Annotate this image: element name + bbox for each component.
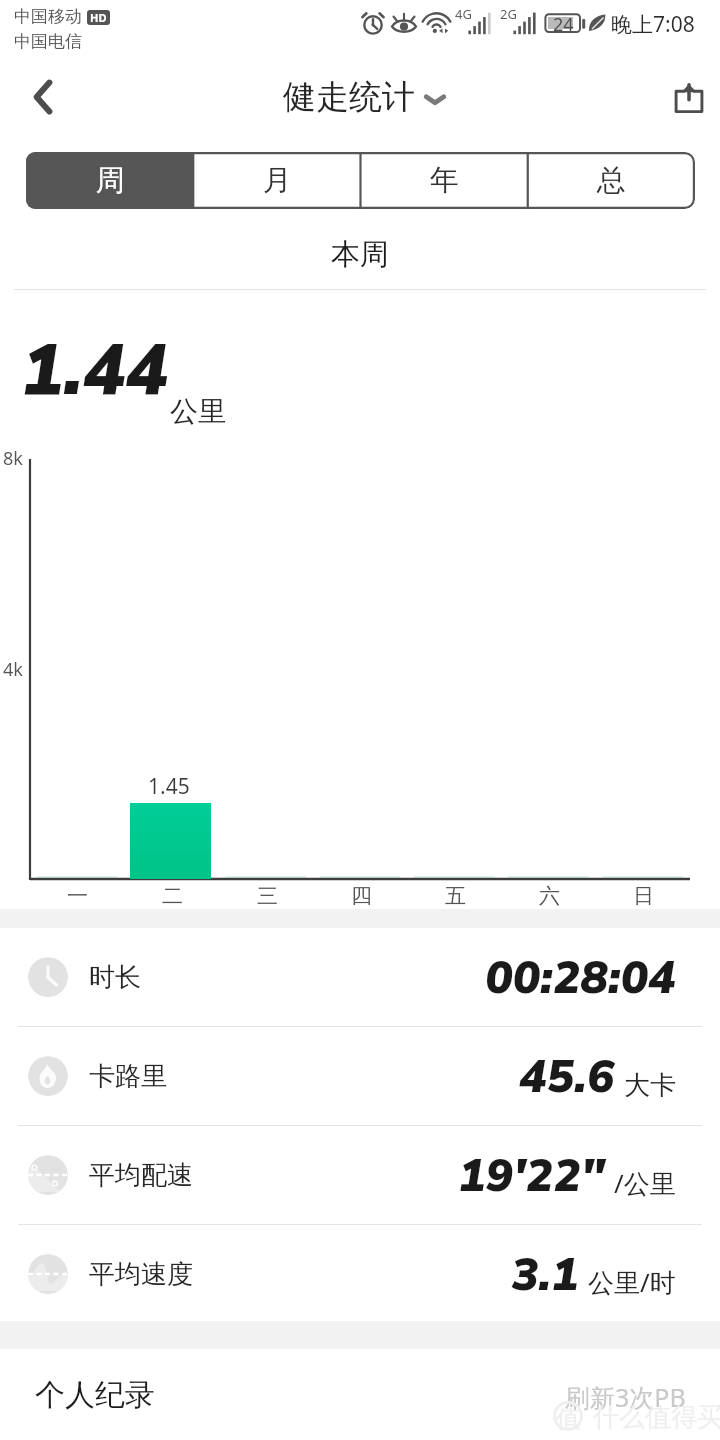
staticText: 1.44 [21, 322, 169, 419]
staticText: 日 [633, 883, 654, 909]
staticText: /公里 [614, 1165, 676, 1201]
staticText: 年 [430, 162, 459, 199]
staticText: 45.6 [519, 1045, 615, 1108]
staticText: 四 [351, 883, 372, 909]
button[interactable]: 周 [26, 152, 194, 209]
staticText: 周 [96, 162, 125, 199]
staticText: 健走统计 [283, 76, 415, 118]
button[interactable]: Back [11, 58, 75, 135]
staticText: 值 [556, 1404, 580, 1434]
staticText: 大卡 [624, 1069, 676, 1102]
staticText: 本周 [0, 236, 720, 273]
button[interactable]: 个人纪录 [0, 1349, 720, 1440]
staticText: 六 [539, 883, 560, 909]
staticText: 一 [67, 883, 88, 909]
staticText: 8k [3, 446, 23, 471]
staticText: 4k [3, 657, 23, 682]
staticText: 月 [263, 162, 292, 199]
button[interactable]: 卡路里 [0, 1027, 720, 1125]
staticText: 什么值得买 [593, 1401, 720, 1434]
staticText: 五 [445, 883, 466, 909]
button[interactable]: 平均速度 [0, 1225, 720, 1323]
staticText: 2G [500, 5, 517, 23]
button[interactable]: Share [658, 58, 720, 135]
staticText: 公里 [170, 394, 226, 429]
button[interactable]: 平均配速 [0, 1126, 720, 1224]
staticText: 个人纪录 [35, 1376, 155, 1414]
staticText: 4G [455, 5, 472, 23]
staticText: 1.45 [148, 772, 190, 801]
button[interactable]: 总 [528, 152, 695, 209]
staticText: 中国电信 [14, 31, 82, 52]
staticText: 总 [597, 162, 626, 199]
staticText: 3.1 [511, 1243, 579, 1306]
button[interactable]: 时长 [0, 928, 720, 1026]
staticText: 24 [553, 12, 574, 37]
staticText: 平均配速 [89, 1159, 193, 1192]
staticText: 二 [162, 883, 183, 909]
staticText: 三 [257, 883, 278, 909]
staticText: 时长 [89, 961, 141, 994]
button[interactable]: 健走统计 [283, 76, 446, 118]
staticText: 卡路里 [89, 1060, 167, 1093]
staticText: 公里/时 [588, 1264, 676, 1300]
button[interactable]: 月 [194, 152, 361, 209]
staticText: 刷新3次PB [565, 1380, 686, 1414]
staticText: 晚上7:08 [611, 10, 695, 39]
staticText: 19′22″ [458, 1144, 605, 1207]
staticText: 00:28:04 [485, 946, 676, 1009]
staticText: 平均速度 [89, 1258, 193, 1291]
staticText: HD [90, 10, 107, 25]
button[interactable]: 年 [361, 152, 528, 209]
staticText: 中国移动 [14, 6, 82, 27]
